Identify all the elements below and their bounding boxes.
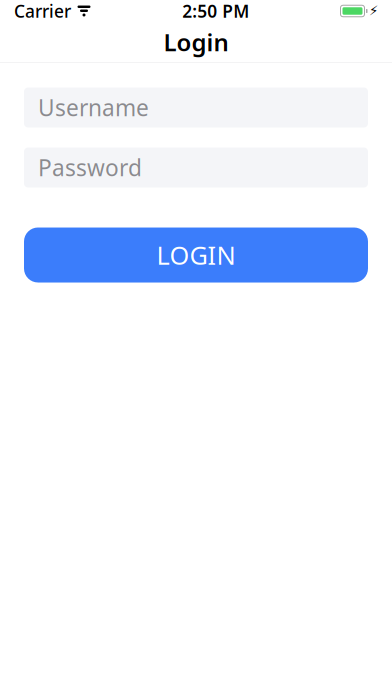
button[interactable]: LOGIN (24, 227, 368, 282)
staticText: ⚡︎ (369, 3, 378, 18)
staticText: Carrier (14, 0, 71, 22)
staticText: Username (38, 92, 149, 122)
button[interactable]: Password (24, 147, 368, 187)
staticText: Password (38, 152, 142, 182)
button[interactable]: Username (24, 87, 368, 127)
staticText: Login (163, 26, 228, 58)
staticText: LOGIN (156, 238, 235, 272)
staticText: 2:50 PM (182, 0, 249, 22)
